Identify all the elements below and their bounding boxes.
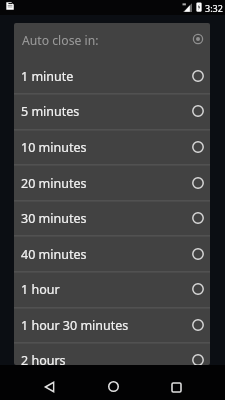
staticText: 30 minutes [21, 210, 87, 227]
button[interactable]: 1 minute [14, 58, 210, 94]
button[interactable]: Back [31, 369, 67, 400]
staticText: Auto close in: [22, 32, 99, 49]
button[interactable]: 10 minutes [14, 129, 210, 165]
staticText: 10 minutes [21, 139, 87, 156]
button[interactable]: 20 minutes [14, 165, 210, 201]
button[interactable]: 2 hours [14, 342, 210, 365]
staticText: 1 hour [21, 281, 60, 298]
staticText: 1 minute [21, 68, 74, 85]
staticText: 5 minutes [21, 103, 80, 120]
staticText: 20 minutes [21, 175, 87, 192]
staticText: 1 hour 30 minutes [21, 317, 129, 334]
staticText: 2 hours [21, 352, 66, 365]
button[interactable]: 1 hour 30 minutes [14, 307, 210, 343]
button[interactable]: 40 minutes [14, 236, 210, 272]
button[interactable]: 30 minutes [14, 200, 210, 236]
staticText: 40 minutes [21, 246, 87, 263]
staticText: 3:32 [205, 2, 223, 14]
button[interactable]: 1 hour [14, 271, 210, 307]
button[interactable]: Recents [158, 370, 194, 400]
button[interactable]: 5 minutes [14, 93, 210, 129]
button[interactable]: Home [95, 369, 131, 400]
button[interactable]: Auto close in: [14, 23, 210, 58]
